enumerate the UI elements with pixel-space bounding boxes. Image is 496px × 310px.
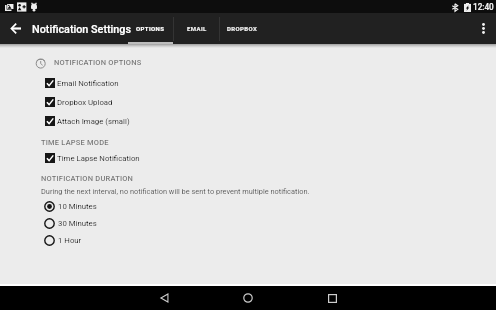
button[interactable]: Time Lapse Notification bbox=[0, 149, 496, 167]
staticText: 30 Minutes bbox=[58, 219, 97, 228]
button[interactable]: OPTIONS bbox=[128, 13, 173, 44]
button[interactable]: Recent apps bbox=[306, 286, 358, 310]
button[interactable]: More options bbox=[471, 13, 496, 44]
staticText: Attach Image (small) bbox=[57, 117, 130, 126]
button[interactable]: 10 Minutes bbox=[0, 198, 496, 215]
staticText: NOTIFICATION DURATION bbox=[41, 174, 134, 183]
staticText: DROPBOX bbox=[227, 25, 258, 32]
button[interactable]: Home bbox=[222, 286, 274, 310]
button[interactable]: DROPBOX bbox=[220, 13, 265, 44]
staticText: OPTIONS bbox=[136, 25, 165, 32]
button[interactable]: Email Notification bbox=[0, 74, 496, 92]
button[interactable]: Navigate up bbox=[0, 13, 31, 44]
staticText: TIME LAPSE MODE bbox=[41, 138, 109, 147]
button[interactable]: 30 Minutes bbox=[0, 215, 496, 232]
button[interactable]: Back bbox=[138, 286, 190, 310]
staticText: Notification Settings bbox=[32, 23, 132, 36]
button[interactable]: EMAIL bbox=[174, 13, 219, 44]
staticText: 12:40 bbox=[473, 2, 494, 12]
staticText: NOTIFICATION OPTIONS bbox=[54, 58, 142, 67]
staticText: EMAIL bbox=[187, 25, 207, 32]
button[interactable]: Attach Image (small) bbox=[0, 112, 496, 130]
staticText: Time Lapse Notification bbox=[57, 154, 140, 163]
staticText: Dropbox Upload bbox=[57, 98, 113, 107]
button[interactable]: Dropbox Upload bbox=[0, 93, 496, 111]
staticText: Email Notification bbox=[57, 79, 119, 88]
staticText: 1 Hour bbox=[58, 236, 82, 245]
button[interactable]: 1 Hour bbox=[0, 232, 496, 249]
staticText: During the next interval, no notificatio… bbox=[41, 187, 310, 196]
staticText: 10 Minutes bbox=[58, 202, 97, 211]
